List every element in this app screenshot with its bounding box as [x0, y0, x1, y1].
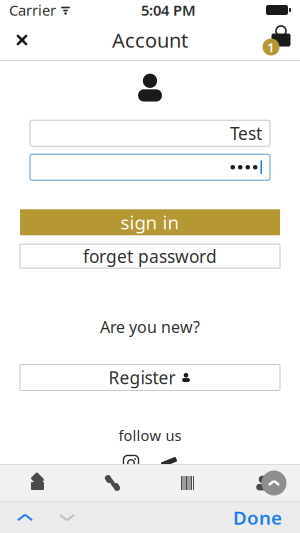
button[interactable]: Home: [0, 465, 75, 501]
button[interactable]: Register: [20, 364, 280, 390]
staticText: 5:04 PM: [141, 0, 196, 20]
staticText: Carrier: [9, 0, 56, 20]
button[interactable]: Close: [0, 20, 44, 60]
staticText: 1: [267, 38, 275, 56]
button[interactable]: Telegram: [156, 452, 182, 474]
button[interactable]: Scroll to top: [257, 466, 291, 500]
button[interactable]: Cart, 1 item: [256, 20, 300, 60]
button[interactable]: sign in: [20, 209, 280, 235]
staticText: Done: [233, 505, 282, 530]
staticText: Register: [108, 366, 175, 389]
staticText: forget password: [83, 245, 217, 268]
button[interactable]: Previous field: [4, 502, 46, 532]
button[interactable]: Account: [225, 465, 300, 501]
staticText: Account: [112, 27, 188, 53]
button[interactable]: Done: [221, 502, 294, 532]
staticText: Test: [230, 122, 262, 145]
staticText: sign in: [120, 210, 179, 235]
button[interactable]: [30, 154, 270, 180]
button[interactable]: Instagram: [118, 452, 144, 474]
staticText: Are you new?: [100, 316, 200, 337]
button[interactable]: forget password: [20, 244, 280, 268]
button[interactable]: Call: [75, 465, 150, 501]
staticText: follow us: [118, 425, 181, 445]
button[interactable]: Next field: [46, 502, 88, 532]
button[interactable]: Test: [30, 120, 270, 146]
button[interactable]: Scan barcode: [150, 465, 225, 501]
